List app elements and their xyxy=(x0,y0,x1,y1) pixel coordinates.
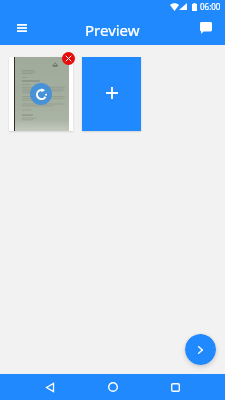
staticText: 06:00 xyxy=(200,1,221,12)
button[interactable]: Back xyxy=(35,374,64,400)
button[interactable]: Messages xyxy=(196,18,216,38)
button[interactable] xyxy=(9,57,73,131)
button[interactable]: Recent apps xyxy=(161,374,190,400)
button[interactable]: Retry xyxy=(30,83,52,105)
button[interactable]: Next xyxy=(185,334,216,365)
button[interactable]: Open navigation menu xyxy=(12,18,32,38)
button[interactable]: Remove xyxy=(62,52,75,65)
button[interactable]: Home xyxy=(98,374,127,400)
staticText: Preview xyxy=(85,20,140,40)
button[interactable]: Add page xyxy=(82,57,141,131)
